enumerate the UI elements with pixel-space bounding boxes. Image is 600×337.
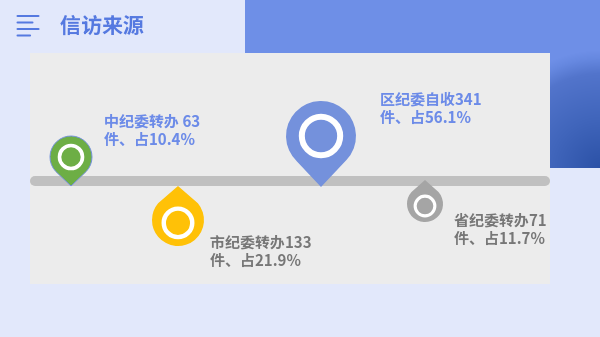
button[interactable]: 中纪委转办 63 件、占10.4% — [104, 110, 201, 149]
button[interactable]: 省纪委转办71 件、占11.7% — [454, 209, 547, 248]
button[interactable]: 省纪委转办71件、占11.7% — [407, 180, 443, 222]
button[interactable]: 信访来源 — [60, 9, 144, 39]
staticText: 中纪委转办 63 件、占10.4% — [104, 110, 201, 149]
button[interactable]: 区纪委自收341件、占56.1% — [286, 101, 356, 187]
staticText: 省纪委转办71 件、占11.7% — [454, 209, 547, 248]
staticText: 市纪委转办133 件、占21.9% — [210, 231, 312, 270]
button[interactable]: 区纪委自收341 件、占56.1% — [380, 88, 482, 127]
button[interactable]: 中纪委转办 63件、占10.4% — [50, 136, 92, 186]
button[interactable]: 市纪委转办133件、占21.9% — [152, 186, 204, 246]
button[interactable]: Menu — [10, 9, 46, 42]
button[interactable]: 市纪委转办133 件、占21.9% — [210, 231, 312, 270]
staticText: 区纪委自收341 件、占56.1% — [380, 88, 482, 127]
staticText: 信访来源 — [60, 9, 144, 39]
